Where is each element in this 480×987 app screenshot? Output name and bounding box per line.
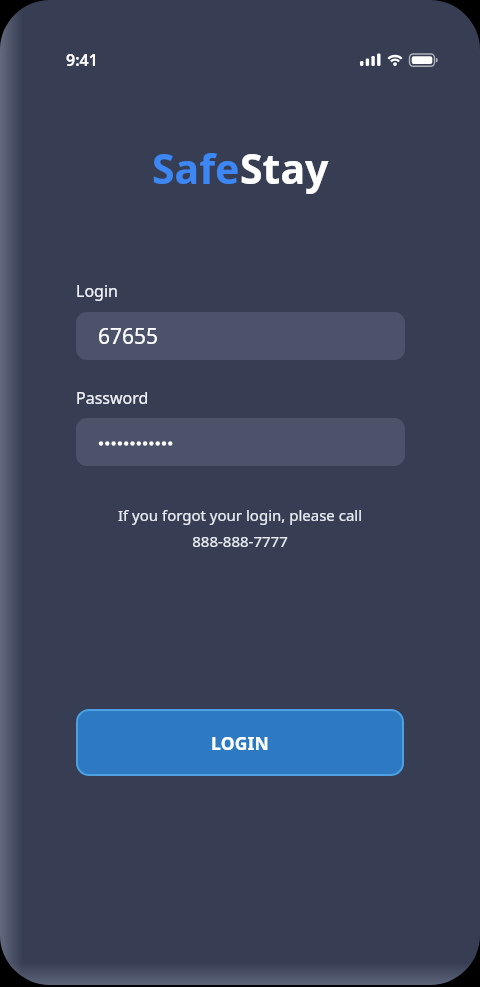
staticText: 67655 <box>98 322 159 351</box>
staticText: Safe <box>152 140 240 196</box>
staticText: 888-888-7777 <box>0 531 480 551</box>
staticText: Login <box>76 280 118 302</box>
button[interactable]: 67655 <box>76 312 405 360</box>
staticText: LOGIN <box>211 731 269 755</box>
staticText: Password <box>76 387 149 409</box>
button[interactable]: LOGIN <box>76 709 404 776</box>
staticText: Stay <box>240 140 329 196</box>
button[interactable] <box>76 418 405 466</box>
staticText: 9:41 <box>66 49 98 71</box>
staticText: If you forgot your login, please call <box>0 505 480 525</box>
